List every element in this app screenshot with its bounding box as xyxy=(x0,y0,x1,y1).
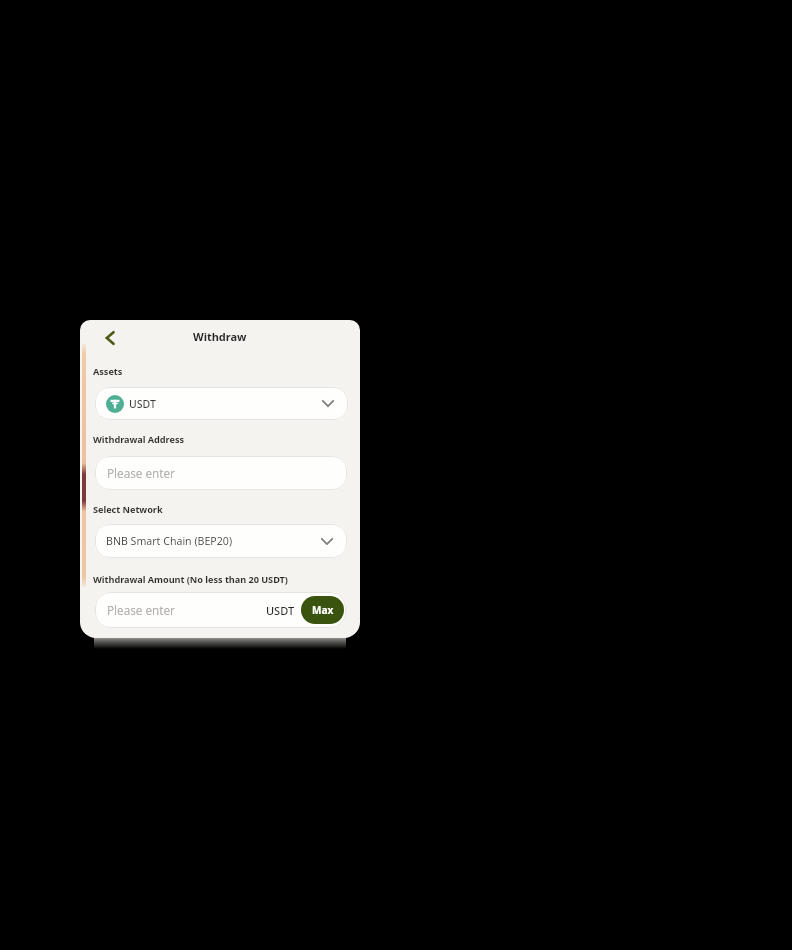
staticText: Withdrawal Address xyxy=(93,433,185,446)
button[interactable]: BNB Smart Chain (BEP20) xyxy=(95,524,347,558)
staticText: Please enter xyxy=(107,602,175,618)
button[interactable]: USDT xyxy=(95,387,348,420)
button[interactable]: Please enter xyxy=(95,592,346,628)
staticText: Withdrawal Amount (No less than 20 USDT) xyxy=(93,573,288,586)
staticText: USDT xyxy=(129,397,156,411)
button[interactable]: Max xyxy=(301,596,344,624)
staticText: USDT xyxy=(266,603,295,618)
staticText: Withdraw xyxy=(193,329,247,344)
staticText: Select Network xyxy=(93,503,163,516)
staticText: BNB Smart Chain (BEP20) xyxy=(106,534,233,548)
staticText: Assets xyxy=(93,365,123,378)
button[interactable]: Please enter xyxy=(95,456,347,490)
staticText: Max xyxy=(312,603,334,617)
staticText: Please enter xyxy=(107,465,175,481)
button[interactable] xyxy=(98,326,122,350)
